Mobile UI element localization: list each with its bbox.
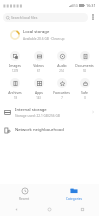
staticText: 214 bbox=[59, 69, 64, 73]
button[interactable]: Images bbox=[3, 51, 27, 73]
staticText: 92 bbox=[83, 69, 86, 73]
button[interactable]: Recent bbox=[0, 184, 49, 203]
staticText: 5G bbox=[74, 4, 78, 8]
button[interactable]: Videos bbox=[27, 51, 50, 73]
staticText: Archives bbox=[8, 90, 22, 95]
staticText: 7 bbox=[61, 96, 63, 100]
button[interactable]: More options bbox=[88, 12, 98, 22]
button[interactable]: Search local files bbox=[3, 13, 88, 22]
staticText: Recent bbox=[19, 197, 30, 201]
staticText: 16:31 bbox=[86, 3, 96, 8]
button[interactable]: Audio bbox=[50, 51, 73, 73]
button[interactable]: Internal storage bbox=[0, 103, 99, 121]
button[interactable]: Network neighbourhood bbox=[0, 121, 99, 139]
staticText: Internal storage bbox=[15, 107, 47, 113]
staticText: 0 bbox=[84, 96, 86, 100]
staticText: 143 bbox=[36, 96, 41, 100]
staticText: Audio bbox=[57, 63, 67, 68]
button[interactable]: Apps bbox=[27, 78, 50, 100]
staticText: Documents bbox=[75, 63, 94, 68]
staticText: Images bbox=[9, 63, 21, 68]
staticText: Local storage bbox=[23, 29, 50, 35]
staticText: 67 bbox=[37, 69, 40, 73]
staticText: Favourites bbox=[53, 90, 70, 95]
staticText: Videos bbox=[33, 63, 44, 68]
button[interactable]: Favourites bbox=[50, 78, 73, 100]
staticText: Safe bbox=[81, 90, 88, 95]
staticText: Storage used: 22.1 GB/256 GB bbox=[15, 114, 60, 118]
button[interactable]: Safe bbox=[73, 78, 96, 100]
staticText: Available 20.6 GB · Clean up bbox=[23, 37, 65, 41]
button[interactable]: Archives bbox=[3, 78, 27, 100]
staticText: Apps bbox=[35, 90, 43, 95]
button[interactable]: Categories bbox=[49, 184, 99, 203]
button[interactable]: Recents bbox=[66, 203, 99, 216]
button[interactable]: Home bbox=[33, 203, 66, 216]
staticText: 1278 bbox=[12, 69, 18, 73]
button[interactable]: Local storage bbox=[3, 24, 96, 45]
button[interactable]: Documents bbox=[73, 51, 96, 73]
staticText: 18 bbox=[14, 96, 17, 100]
staticText: Network neighbourhood bbox=[15, 127, 64, 133]
staticText: Search local files bbox=[11, 15, 38, 20]
staticText: Categories bbox=[66, 197, 83, 201]
